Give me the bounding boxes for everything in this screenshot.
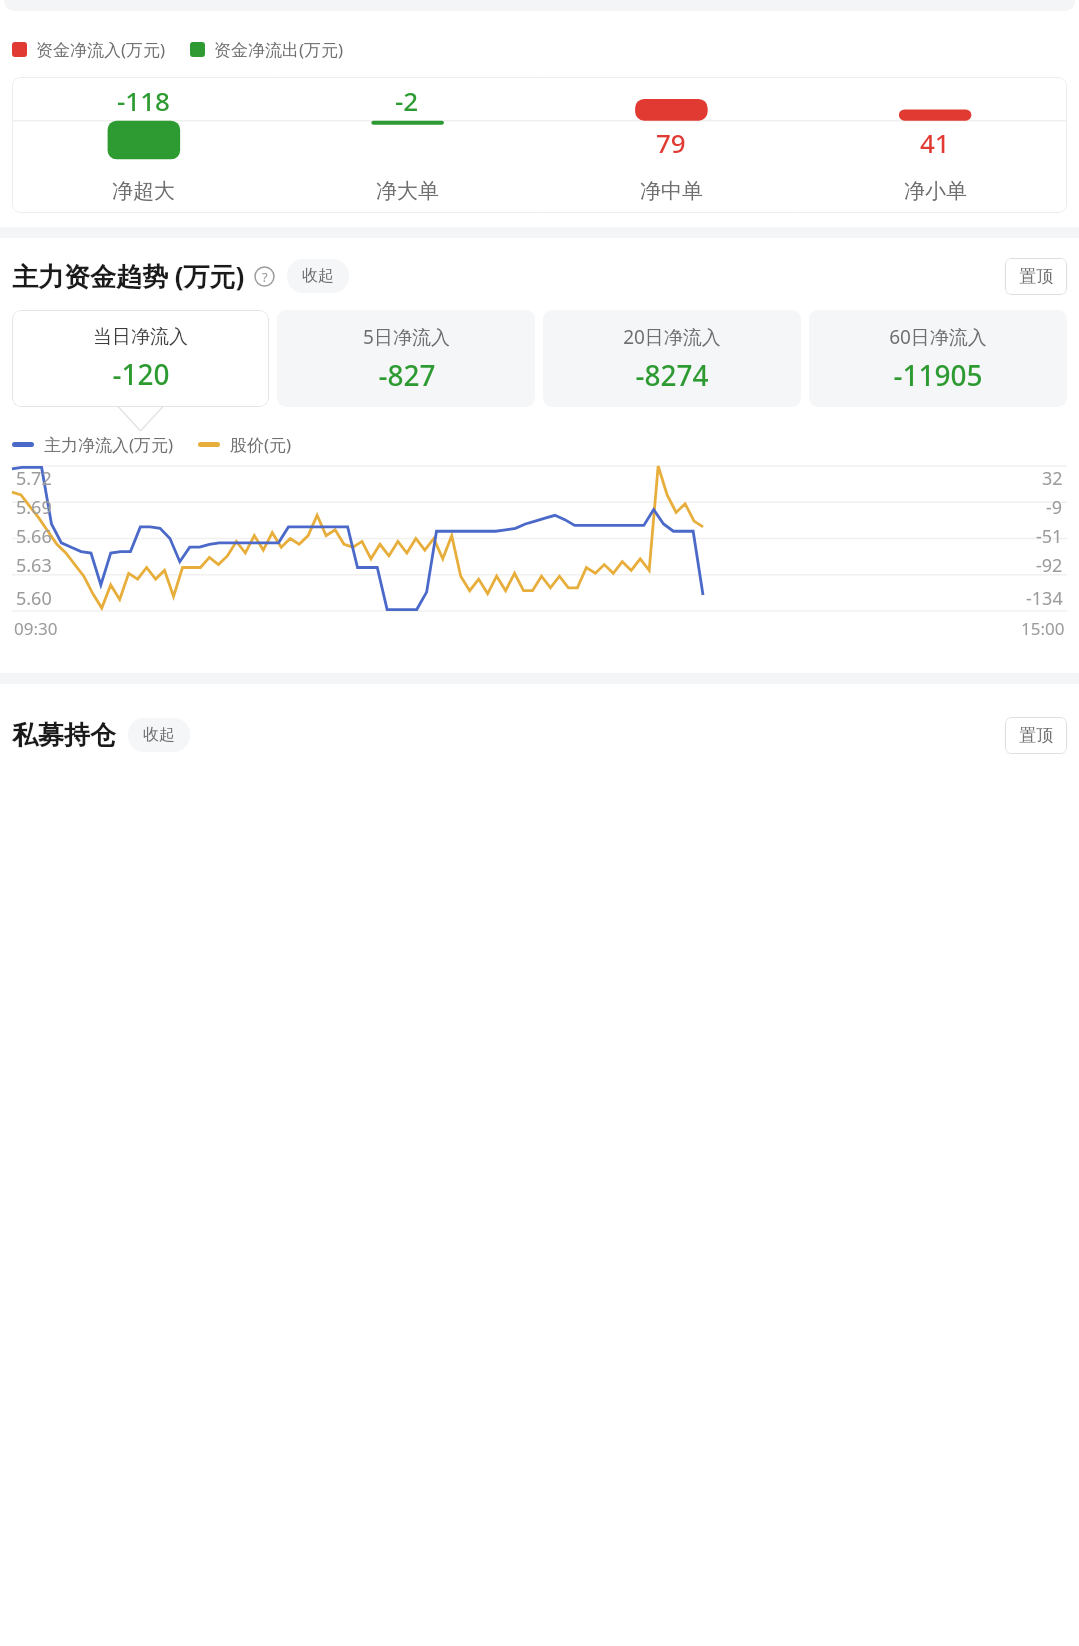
staticText: -827 — [378, 356, 436, 394]
button[interactable]: 收起 — [128, 718, 190, 752]
staticText: 私募持仓 — [12, 719, 116, 752]
staticText: 79 — [656, 125, 686, 160]
staticText: 收起 — [302, 266, 334, 286]
staticText: 净中单 — [640, 178, 703, 204]
staticText: 当日净流入 — [93, 325, 188, 349]
staticText: -134 — [1026, 586, 1063, 611]
button[interactable]: 帮助 — [254, 266, 275, 287]
staticText: 41 — [920, 125, 950, 160]
staticText: 资金净流入(万元) — [36, 38, 166, 61]
staticText: -2 — [395, 83, 419, 118]
staticText: -9 — [1046, 495, 1063, 520]
staticText: 净超大 — [112, 178, 175, 204]
staticText: 净大单 — [376, 178, 439, 204]
staticText: 5.60 — [16, 586, 52, 611]
staticText: 5.63 — [16, 553, 52, 578]
staticText: 32 — [1042, 466, 1063, 491]
staticText: 资金净流出(万元) — [214, 38, 344, 61]
staticText: 5.72 — [16, 466, 52, 491]
staticText: 置顶 — [1019, 725, 1053, 746]
staticText: 5日净流入 — [363, 324, 450, 350]
staticText: 主力净流入(万元) — [44, 433, 174, 456]
staticText: 主力资金趋势 (万元) — [12, 258, 245, 294]
staticText: 60日净流入 — [889, 324, 987, 350]
staticText: 5.69 — [16, 495, 52, 520]
staticText: 净小单 — [904, 178, 967, 204]
staticText: -92 — [1036, 553, 1063, 578]
staticText: 股价(元) — [230, 433, 292, 456]
staticText: 20日净流入 — [623, 324, 721, 350]
staticText: -11905 — [893, 356, 983, 394]
staticText: 15:00 — [1021, 617, 1065, 640]
staticText: -51 — [1036, 524, 1063, 549]
button[interactable]: 置顶 — [1005, 258, 1067, 295]
button[interactable]: 20日净流入 — [543, 310, 801, 407]
button[interactable]: 当日净流入 — [12, 310, 269, 407]
staticText: -118 — [117, 83, 170, 118]
staticText: 09:30 — [14, 617, 58, 640]
staticText: 置顶 — [1019, 266, 1053, 287]
button[interactable]: 5日净流入 — [277, 310, 535, 407]
button[interactable]: 60日净流入 — [809, 310, 1067, 407]
staticText: ? — [262, 268, 268, 286]
button[interactable]: 置顶 — [1005, 717, 1067, 754]
staticText: -8274 — [635, 356, 709, 394]
button[interactable]: 收起 — [287, 259, 349, 293]
staticText: 5.66 — [16, 524, 52, 549]
staticText: 收起 — [143, 725, 175, 745]
staticText: -120 — [112, 355, 170, 393]
